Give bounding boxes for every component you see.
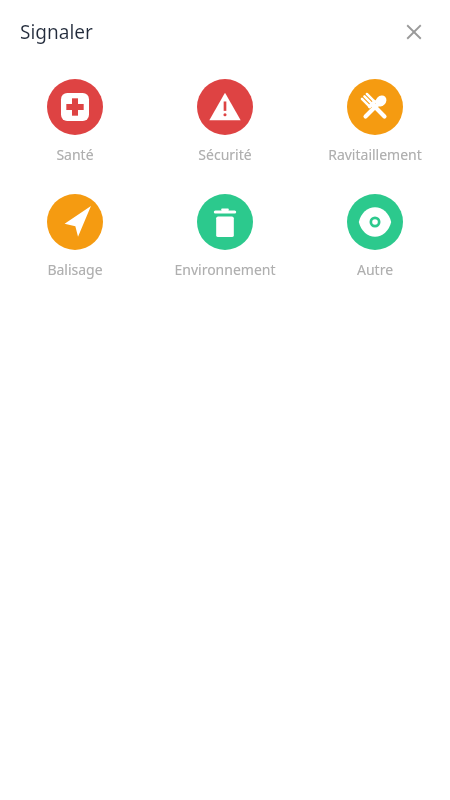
staticText: Sécurité [150,145,300,164]
button[interactable]: Sécurité [150,75,300,168]
button[interactable]: Ravitaillement [300,75,450,168]
staticText: Environnement [150,260,300,279]
staticText: Autre [300,260,450,279]
button[interactable]: Balisage [0,190,150,283]
staticText: Signaler [20,19,93,45]
staticText: Ravitaillement [300,145,450,164]
staticText: Balisage [0,260,150,279]
staticText: Santé [0,145,150,164]
button[interactable]: Environnement [150,190,300,283]
button[interactable]: Santé [0,75,150,168]
button[interactable]: Autre [300,190,450,283]
button[interactable]: Fermer [392,10,436,54]
